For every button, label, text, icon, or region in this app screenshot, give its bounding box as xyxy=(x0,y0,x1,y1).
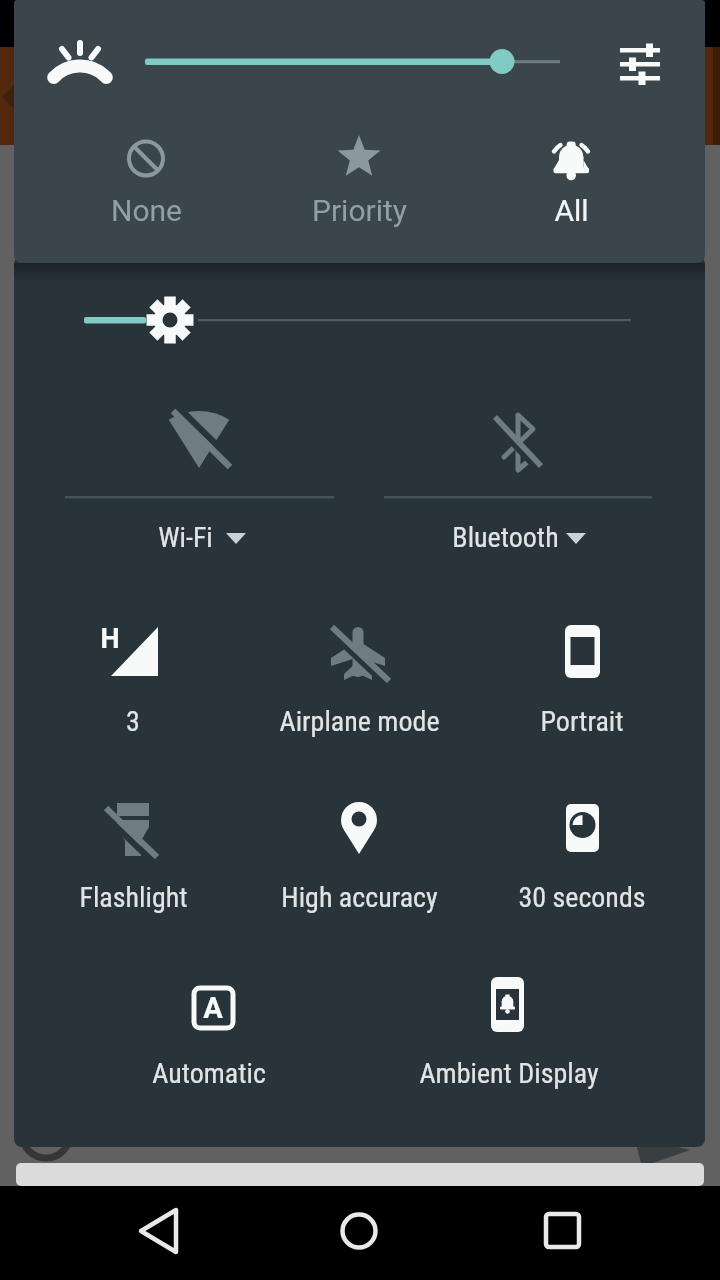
staticText: Priority xyxy=(312,193,407,228)
staticText: Wi-Fi xyxy=(158,521,213,554)
staticText: Airplane mode xyxy=(279,705,440,738)
staticText: 3 xyxy=(126,705,140,738)
staticText: None xyxy=(111,193,182,228)
staticText: Bluetooth xyxy=(452,521,559,554)
staticText: Flashlight xyxy=(79,881,188,914)
staticText: 30 seconds xyxy=(518,881,646,914)
staticText: H xyxy=(100,623,120,655)
staticText: Automatic xyxy=(152,1057,266,1090)
staticText: Ambient Display xyxy=(419,1057,599,1090)
staticText: A xyxy=(203,991,223,1025)
staticText: High accuracy xyxy=(281,881,438,914)
staticText: All xyxy=(554,193,589,228)
staticText: Portrait xyxy=(540,705,624,738)
